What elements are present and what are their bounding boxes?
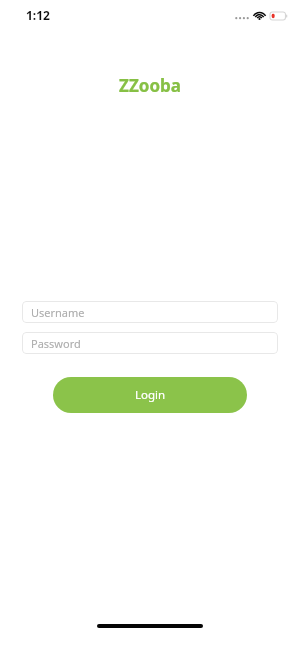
- staticText: 1:12: [26, 7, 50, 23]
- staticText: Password: [31, 336, 81, 351]
- button[interactable]: Login: [53, 377, 247, 413]
- staticText: ZZooba: [119, 74, 181, 97]
- staticText: Username: [31, 305, 85, 320]
- staticText: Login: [135, 387, 166, 403]
- button[interactable]: Username: [22, 301, 278, 323]
- button[interactable]: Password: [22, 332, 278, 354]
